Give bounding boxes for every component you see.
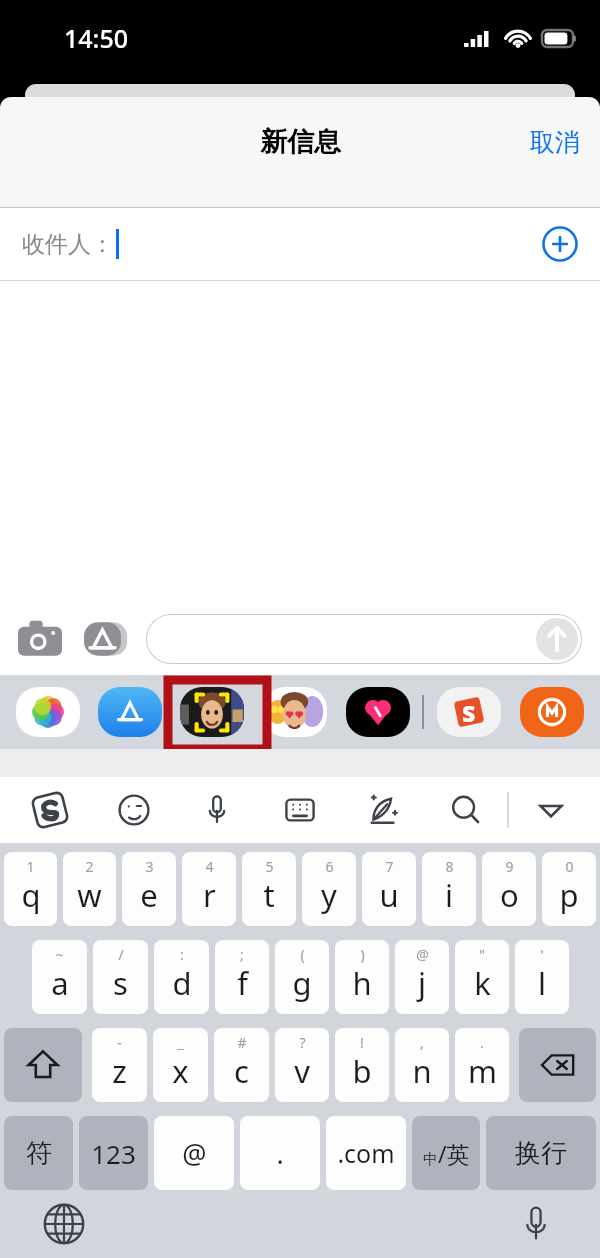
- button[interactable]: ~: [32, 940, 87, 1014]
- button[interactable]: 符: [4, 1116, 73, 1190]
- button[interactable]: Sogou: [434, 684, 503, 740]
- staticText: !: [360, 1033, 364, 1052]
- button[interactable]: 1: [4, 852, 57, 926]
- staticText: 0: [565, 857, 574, 876]
- button[interactable]: Photos: [14, 684, 82, 740]
- staticText: u: [379, 874, 399, 916]
- staticText: h: [352, 962, 372, 1004]
- button[interactable]: ): [335, 940, 389, 1014]
- button[interactable]: Mango TV: [517, 684, 586, 740]
- button[interactable]: .com: [326, 1116, 406, 1190]
- staticText: 取消: [530, 127, 580, 158]
- button[interactable]: 9: [482, 852, 536, 926]
- button[interactable]: 取消: [510, 117, 600, 168]
- button[interactable]: Emoji: [92, 777, 175, 843]
- button[interactable]: 3: [122, 852, 176, 926]
- staticText: p: [559, 874, 579, 916]
- button[interactable]: Digital Touch: [343, 684, 412, 740]
- button[interactable]: ,: [395, 1028, 449, 1102]
- button[interactable]: Handwriting: [341, 777, 424, 843]
- button[interactable]: 0: [542, 852, 596, 926]
- button[interactable]: Shift: [4, 1028, 82, 1102]
- staticText: ;: [240, 945, 244, 964]
- staticText: 2: [85, 857, 94, 876]
- button[interactable]: 2: [63, 852, 116, 926]
- staticText: S: [462, 697, 476, 728]
- button[interactable]: @: [154, 1116, 234, 1190]
- staticText: ': [540, 945, 544, 964]
- button[interactable]: ?: [275, 1028, 329, 1102]
- button[interactable]: 6: [302, 852, 356, 926]
- staticText: z: [112, 1050, 127, 1092]
- button[interactable]: 7: [362, 852, 416, 926]
- button[interactable]: :: [154, 940, 209, 1014]
- staticText: 4: [205, 857, 214, 876]
- button[interactable]: Memoji: [178, 684, 246, 740]
- staticText: @: [416, 945, 429, 964]
- staticText: ): [360, 945, 365, 964]
- button[interactable]: Memoji stickers: [260, 684, 329, 740]
- button[interactable]: Sogou input: [8, 777, 92, 843]
- staticText: 收件人：: [22, 230, 114, 259]
- staticText: m: [468, 1050, 497, 1092]
- staticText: /英: [438, 1138, 470, 1169]
- button[interactable]: (: [275, 940, 329, 1014]
- button[interactable]: .: [240, 1116, 320, 1190]
- button[interactable]: 换行: [486, 1116, 596, 1190]
- staticText: @: [182, 1135, 207, 1172]
- button[interactable]: ': [515, 940, 569, 1014]
- button[interactable]: Camera: [18, 617, 62, 661]
- staticText: .: [276, 1135, 284, 1172]
- button[interactable]: ": [455, 940, 509, 1014]
- staticText: 中: [423, 1150, 438, 1169]
- button[interactable]: !: [335, 1028, 389, 1102]
- staticText: 9: [505, 857, 514, 876]
- staticText: (: [300, 945, 305, 964]
- button[interactable]: Dictation: [512, 1200, 560, 1248]
- button[interactable]: 123: [79, 1116, 148, 1190]
- staticText: 8: [445, 857, 454, 876]
- button[interactable]: 8: [422, 852, 476, 926]
- staticText: 3: [145, 857, 154, 876]
- button[interactable]: Voice input: [175, 777, 258, 843]
- button[interactable]: 中: [412, 1116, 480, 1190]
- button[interactable]: Send: [146, 614, 582, 664]
- staticText: 14:50: [64, 21, 129, 55]
- staticText: j: [418, 962, 426, 1004]
- button[interactable]: #: [214, 1028, 269, 1102]
- staticText: ?: [299, 1033, 306, 1052]
- staticText: v: [294, 1050, 310, 1092]
- staticText: g: [292, 962, 312, 1004]
- button[interactable]: Keyboard layout: [258, 777, 341, 843]
- button[interactable]: Add contact: [542, 226, 578, 262]
- button[interactable]: 5: [242, 852, 296, 926]
- button[interactable]: 4: [182, 852, 236, 926]
- staticText: 5: [265, 857, 274, 876]
- button[interactable]: ;: [215, 940, 269, 1014]
- button[interactable]: _: [153, 1028, 208, 1102]
- button[interactable]: -: [92, 1028, 147, 1102]
- staticText: i: [445, 874, 453, 916]
- staticText: 新信息: [260, 125, 341, 159]
- button[interactable]: Backspace: [519, 1028, 596, 1102]
- button[interactable]: 收件人：: [0, 208, 600, 280]
- staticText: _: [177, 1033, 184, 1052]
- staticText: 7: [385, 857, 394, 876]
- staticText: 1: [26, 857, 35, 876]
- button[interactable]: .: [455, 1028, 509, 1102]
- staticText: y: [321, 874, 337, 916]
- staticText: ,: [420, 1033, 424, 1052]
- staticText: q: [21, 874, 41, 916]
- button[interactable]: Send: [536, 618, 578, 660]
- button[interactable]: App Store apps: [84, 617, 128, 661]
- button[interactable]: @: [395, 940, 449, 1014]
- button[interactable]: App Store: [96, 684, 164, 740]
- button[interactable]: /: [93, 940, 148, 1014]
- staticText: 换行: [515, 1137, 567, 1170]
- button[interactable]: Search: [424, 777, 507, 843]
- staticText: #: [237, 1033, 247, 1052]
- staticText: 符: [26, 1137, 52, 1170]
- button[interactable]: Switch keyboard: [40, 1200, 88, 1248]
- staticText: 123: [91, 1136, 136, 1171]
- button[interactable]: Collapse: [509, 777, 592, 843]
